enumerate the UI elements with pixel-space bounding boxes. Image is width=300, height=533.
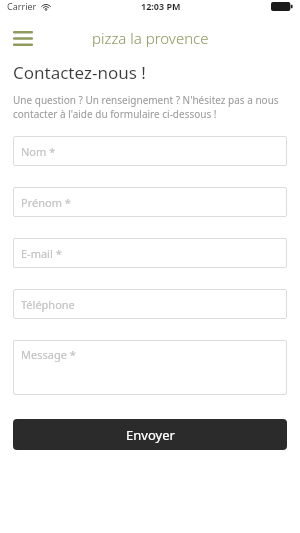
staticText: Prénom * (21, 195, 71, 210)
staticText: pizza la provence (92, 28, 209, 48)
staticText: 12:03 PM (141, 0, 181, 12)
staticText: Carrier (7, 0, 37, 12)
button[interactable]: E-mail * (13, 238, 287, 268)
staticText: Contactez-nous ! (13, 61, 146, 84)
button[interactable]: Menu (6, 21, 40, 55)
staticText: Téléphone (21, 297, 75, 312)
button[interactable]: Téléphone (13, 289, 287, 319)
staticText: E-mail * (21, 246, 62, 261)
staticText: Nom * (21, 144, 56, 159)
staticText: Une question ? Un renseignement ? N'hési… (13, 93, 287, 121)
button[interactable]: Prénom * (13, 187, 287, 217)
staticText: Message * (21, 347, 76, 362)
staticText: Envoyer (126, 426, 175, 444)
button[interactable]: Nom * (13, 136, 287, 166)
button[interactable]: Message * (13, 340, 287, 395)
button[interactable]: Envoyer (13, 419, 287, 450)
